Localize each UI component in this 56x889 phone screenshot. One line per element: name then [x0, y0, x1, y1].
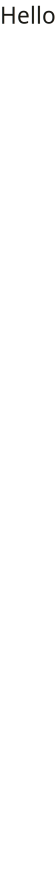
- staticText: Hello: [0, 0, 56, 30]
